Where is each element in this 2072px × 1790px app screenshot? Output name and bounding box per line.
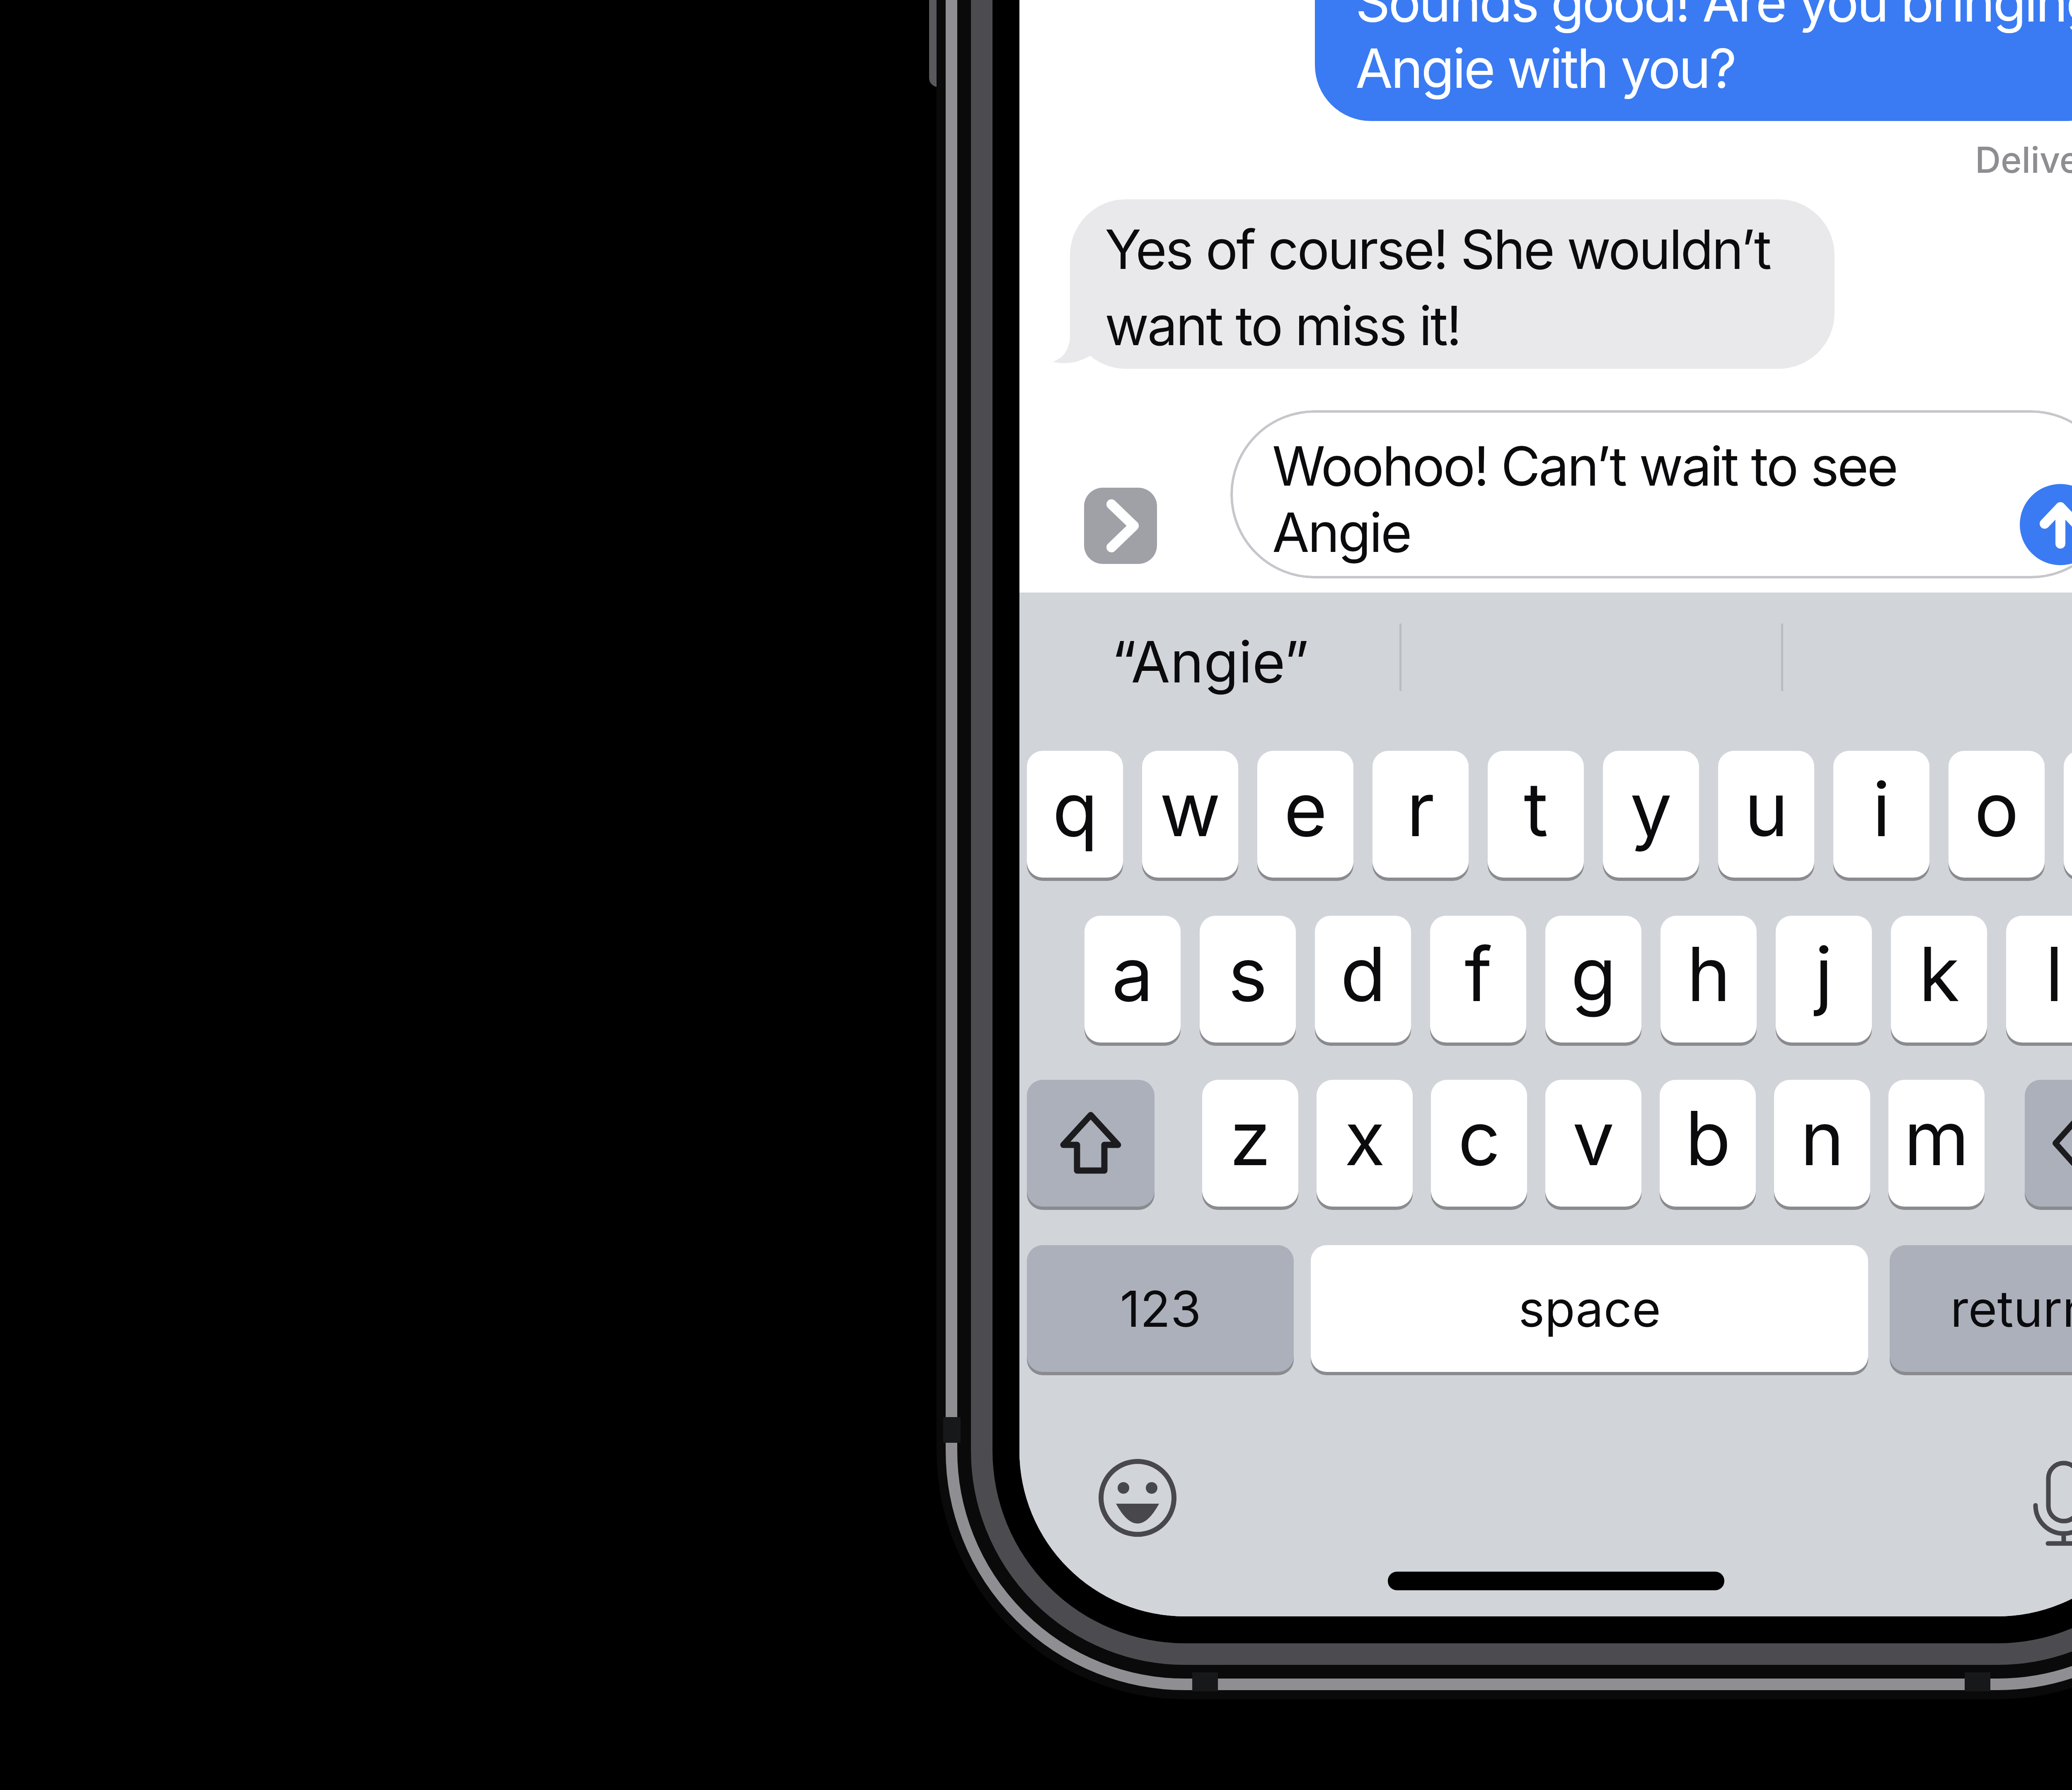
staticText: Woohoo! Can’t wait to see Angie <box>1272 433 1897 565</box>
staticText: m <box>1904 1093 1969 1183</box>
button[interactable] <box>1230 410 2072 578</box>
button[interactable]: r <box>1372 751 1469 878</box>
staticText: i <box>1872 764 1890 854</box>
button[interactable]: j <box>1776 916 1872 1043</box>
button[interactable]: q <box>1027 751 1123 878</box>
staticText: n <box>1800 1093 1844 1183</box>
staticText: r <box>1406 764 1435 854</box>
staticText: q <box>1052 764 1098 854</box>
button[interactable]: e <box>1257 751 1353 878</box>
button[interactable]: n <box>1774 1080 1870 1207</box>
button[interactable]: o <box>1949 751 2045 878</box>
staticText: d <box>1340 929 1386 1019</box>
staticText: c <box>1458 1093 1501 1183</box>
staticText: l <box>2045 929 2063 1019</box>
button[interactable]: g <box>1545 916 1641 1043</box>
button[interactable] <box>2014 1461 2072 1548</box>
button[interactable]: a <box>1084 916 1181 1043</box>
staticText: a <box>1111 929 1154 1019</box>
button[interactable]: z <box>1202 1080 1298 1207</box>
button[interactable] <box>1084 488 1157 564</box>
button[interactable] <box>2020 484 2072 565</box>
staticText: g <box>1571 929 1617 1019</box>
button[interactable]: u <box>1718 751 1814 878</box>
button[interactable]: return <box>1890 1245 2072 1372</box>
staticText: “Angie” <box>1111 627 1309 696</box>
staticText: y <box>1630 764 1672 854</box>
staticText: Yes of course! She wouldn’t want to miss… <box>1105 217 1770 358</box>
button[interactable]: d <box>1315 916 1411 1043</box>
staticText: f <box>1464 929 1492 1019</box>
button[interactable]: m <box>1888 1080 1985 1207</box>
staticText: h <box>1687 929 1731 1019</box>
staticText: b <box>1685 1093 1731 1183</box>
staticText: return <box>1950 1279 2072 1339</box>
staticText: space <box>1518 1279 1661 1339</box>
button[interactable]: p <box>2064 751 2072 878</box>
button[interactable]: “Angie” <box>1019 612 1401 711</box>
staticText: e <box>1284 764 1327 854</box>
button[interactable]: w <box>1142 751 1238 878</box>
button[interactable]: x <box>1317 1080 1413 1207</box>
button[interactable]: v <box>1545 1080 1641 1207</box>
staticText: x <box>1344 1093 1385 1183</box>
staticText: k <box>1919 929 1960 1019</box>
button[interactable]: f <box>1430 916 1526 1043</box>
staticText: Sounds good! Are you bringing Angie with… <box>1356 0 2072 101</box>
staticText: v <box>1572 1093 1615 1183</box>
button[interactable]: s <box>1200 916 1296 1043</box>
button[interactable]: 123 <box>1027 1245 1294 1372</box>
button[interactable]: space <box>1311 1245 1868 1372</box>
button[interactable]: l <box>2006 916 2072 1043</box>
button[interactable]: k <box>1891 916 1987 1043</box>
staticText: j <box>1815 929 1833 1019</box>
staticText: s <box>1228 929 1268 1019</box>
button[interactable]: c <box>1431 1080 1527 1207</box>
staticText: 123 <box>1120 1279 1201 1339</box>
staticText: o <box>1974 764 2019 854</box>
button[interactable]: t <box>1488 751 1584 878</box>
button[interactable]: i <box>1833 751 1929 878</box>
button[interactable]: b <box>1660 1080 1756 1207</box>
staticText: z <box>1230 1093 1271 1183</box>
button[interactable]: h <box>1661 916 1757 1043</box>
staticText: w <box>1159 764 1221 854</box>
button[interactable] <box>2025 1080 2072 1207</box>
button[interactable] <box>1082 1442 1193 1554</box>
button[interactable]: y <box>1603 751 1699 878</box>
staticText: Delivered <box>1975 138 2072 181</box>
button[interactable] <box>1027 1080 1155 1207</box>
staticText: u <box>1744 764 1789 854</box>
staticText: t <box>1524 764 1548 854</box>
